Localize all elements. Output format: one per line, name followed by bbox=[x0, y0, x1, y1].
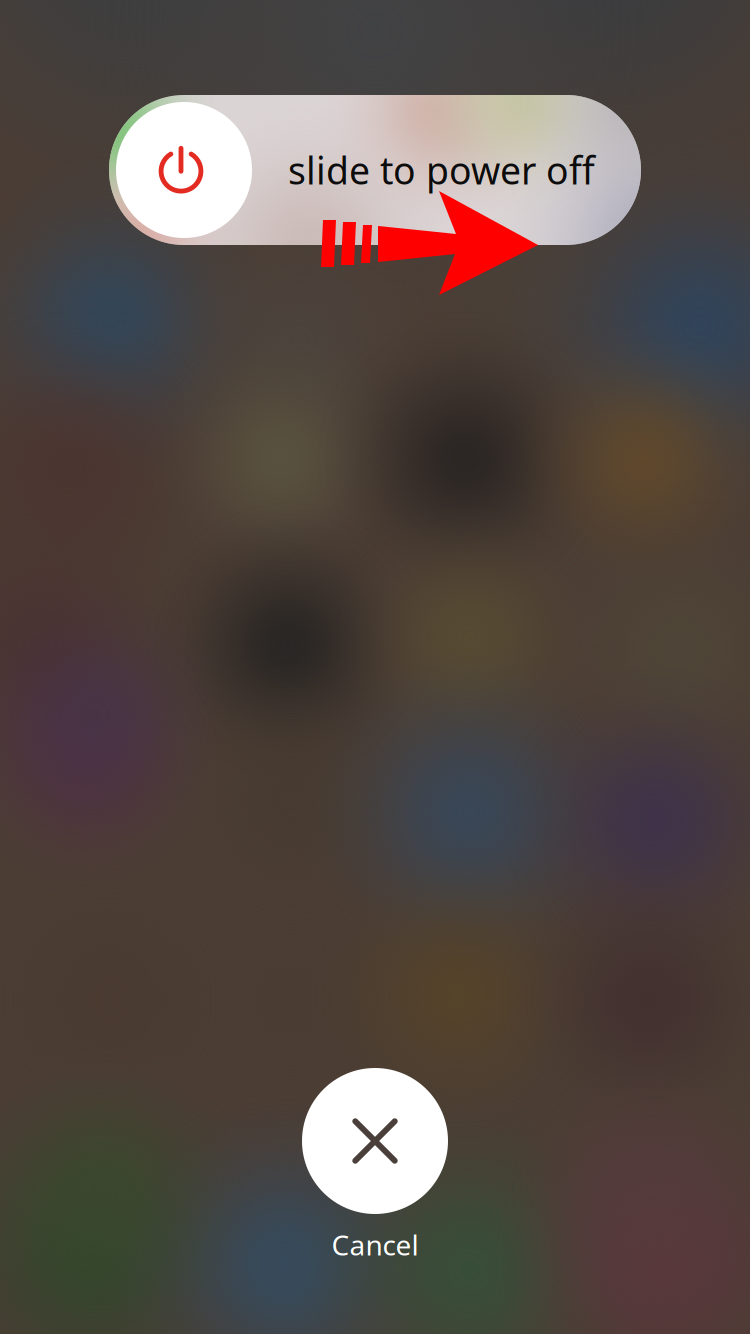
button[interactable]: Cancel bbox=[225, 1068, 525, 1263]
staticText: Cancel bbox=[331, 1226, 418, 1263]
staticText: slide to power off bbox=[288, 145, 595, 195]
button[interactable]: slide to power off bbox=[109, 95, 641, 245]
